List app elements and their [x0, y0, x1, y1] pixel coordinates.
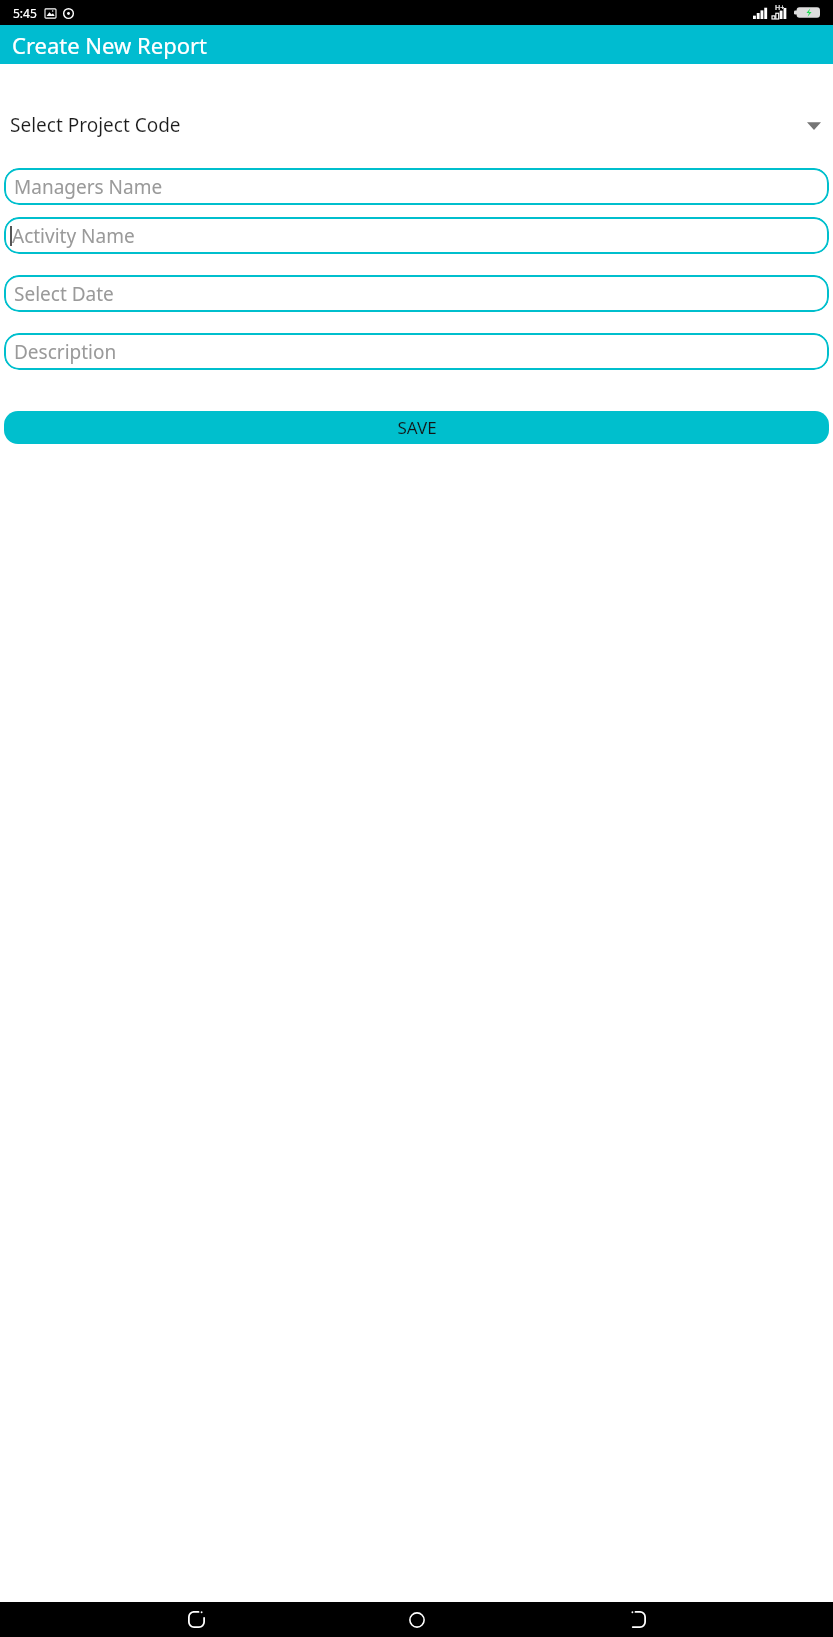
staticText: SAVE	[397, 416, 437, 439]
button[interactable]: Home	[393, 1602, 441, 1637]
staticText: 5:45	[13, 5, 37, 21]
button[interactable]: Select Project Code	[9, 106, 824, 144]
other: Open project code dropdown	[807, 120, 821, 131]
staticText: Managers Name	[14, 174, 163, 200]
staticText: Select Date	[14, 281, 114, 307]
button[interactable]: Activity Name	[4, 217, 829, 254]
staticText: H+	[775, 3, 785, 13]
staticText: Select Project Code	[10, 112, 807, 138]
button[interactable]: Select Date	[4, 275, 829, 312]
staticText: Create New Report	[12, 30, 208, 60]
button[interactable]: SAVE	[4, 411, 829, 444]
button[interactable]: Back	[172, 1602, 220, 1637]
button[interactable]: Recent apps	[613, 1602, 661, 1637]
button[interactable]: Description	[4, 333, 829, 370]
staticText: Activity Name	[12, 223, 135, 249]
staticText: Description	[14, 339, 117, 365]
button[interactable]: Managers Name	[4, 168, 829, 205]
